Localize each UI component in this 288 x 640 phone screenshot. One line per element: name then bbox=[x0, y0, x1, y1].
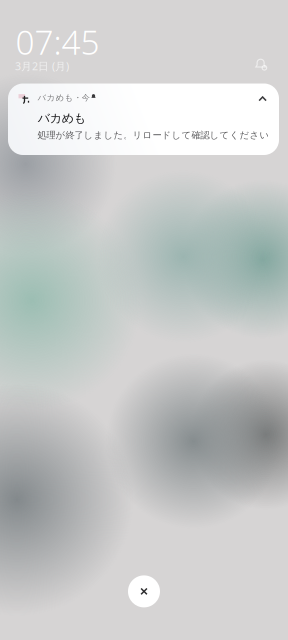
staticText: バカめも bbox=[38, 111, 86, 126]
staticText: 3月2日 (月) bbox=[15, 59, 69, 73]
staticText: 07:45 bbox=[16, 20, 100, 64]
button[interactable]: バカめも・今 bbox=[8, 83, 279, 155]
staticText: バカめも・今 bbox=[37, 92, 89, 103]
staticText: 処理が終了しました。リロードして確認してください bbox=[37, 129, 269, 141]
button[interactable]: Notification settings bbox=[255, 58, 268, 71]
button[interactable]: Close bbox=[128, 575, 160, 607]
